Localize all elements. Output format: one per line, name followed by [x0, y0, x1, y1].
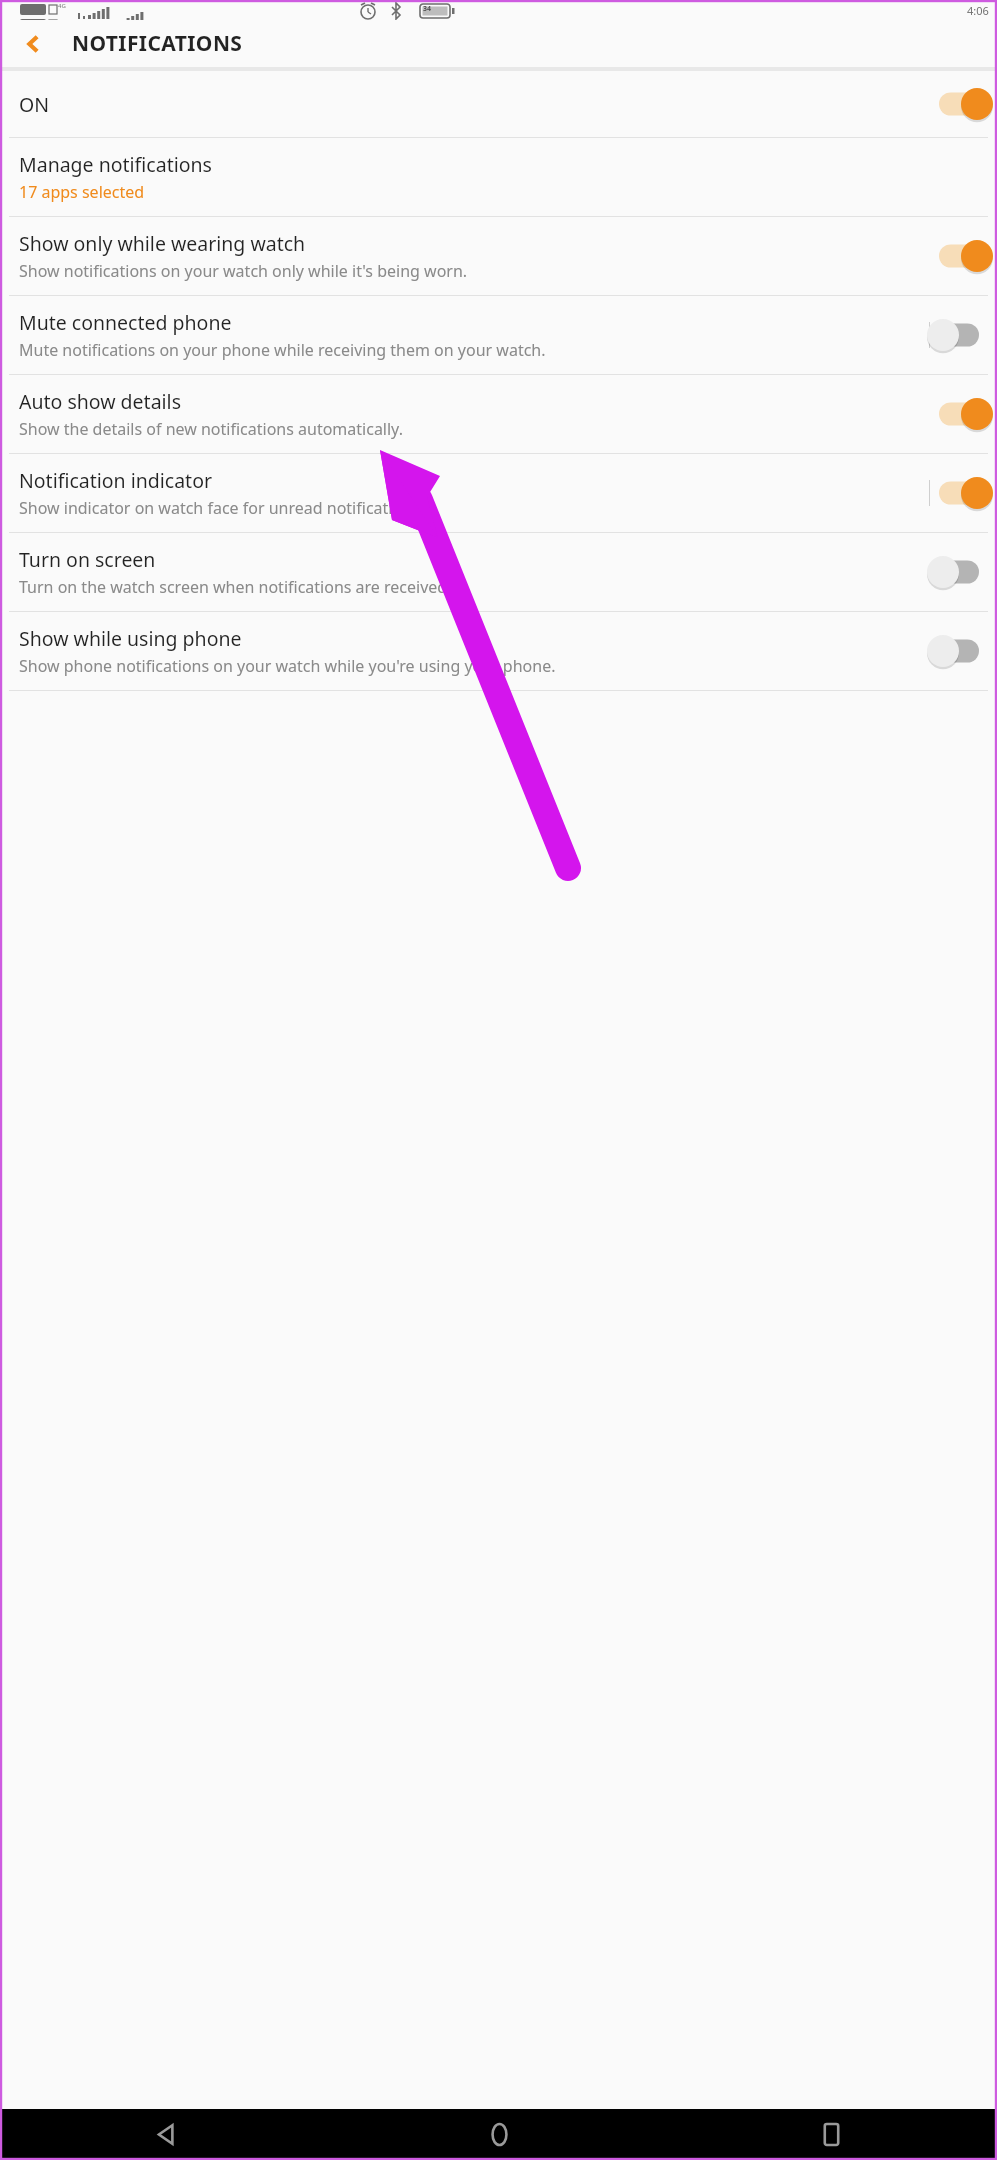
staticText: Notification indicator: [19, 467, 213, 494]
button[interactable]: Recent apps: [665, 2109, 997, 2160]
staticText: 17 apps selected: [19, 181, 145, 203]
staticText: 4:06: [967, 3, 989, 18]
button[interactable]: Manage notifications: [0, 138, 997, 216]
staticText: Show phone notifications on your watch w…: [19, 655, 556, 677]
button[interactable]: Toggle on: [935, 394, 989, 434]
staticText: Manage notifications: [19, 151, 212, 178]
staticText: NOTIFICATIONS: [72, 29, 243, 58]
button[interactable]: Toggle off: [935, 552, 989, 592]
button[interactable]: Toggle off: [935, 631, 989, 671]
button[interactable]: ON: [0, 71, 997, 137]
button[interactable]: Toggle on: [935, 473, 989, 513]
staticText: Turn on the watch screen when notificati…: [19, 576, 452, 598]
button[interactable]: Mute connected phone: [0, 296, 997, 374]
button[interactable]: Notification indicator: [0, 454, 997, 532]
button[interactable]: Auto show details: [0, 375, 997, 453]
staticText: Mute notifications on your phone while r…: [19, 339, 546, 361]
button[interactable]: Toggle off: [935, 315, 989, 355]
button[interactable]: Turn on screen: [0, 533, 997, 611]
button[interactable]: Show while using phone: [0, 612, 997, 690]
staticText: 4G: [58, 2, 66, 10]
staticText: ON: [19, 91, 50, 118]
button[interactable]: Back: [0, 2109, 333, 2160]
staticText: 34: [423, 4, 432, 14]
button[interactable]: Toggle on: [935, 84, 989, 124]
button[interactable]: Show only while wearing watch: [0, 217, 997, 295]
staticText: Show the details of new notifications au…: [19, 418, 403, 440]
staticText: Turn on screen: [19, 546, 156, 573]
staticText: Auto show details: [19, 388, 181, 415]
staticText: Mute connected phone: [19, 309, 232, 336]
button[interactable]: Home: [333, 2109, 665, 2160]
staticText: Show only while wearing watch: [19, 230, 306, 257]
button[interactable]: Toggle on: [935, 236, 989, 276]
staticText: Show indicator on watch face for unread …: [19, 497, 424, 519]
staticText: Show notifications on your watch only wh…: [19, 260, 468, 282]
button[interactable]: Back: [12, 22, 56, 66]
staticText: Show while using phone: [19, 625, 242, 652]
